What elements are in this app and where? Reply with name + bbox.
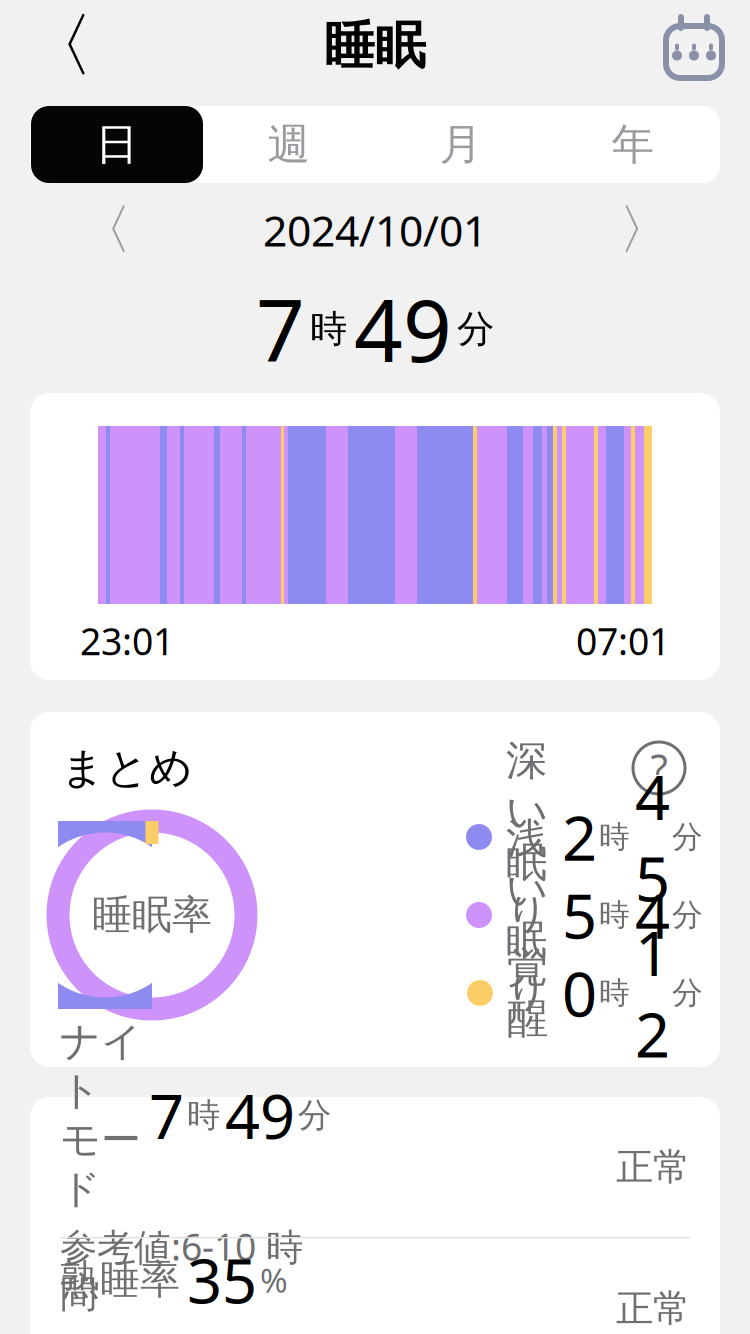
staticText: 分	[457, 306, 494, 352]
staticText: 時	[599, 896, 630, 934]
button[interactable]: 日	[31, 106, 203, 183]
staticText: ナイトモード	[60, 1017, 142, 1213]
staticText: 分	[672, 818, 703, 856]
staticText: 23:01	[80, 616, 174, 666]
staticText: 7	[149, 1075, 184, 1156]
button[interactable]: 年	[547, 106, 719, 183]
staticText: 覚醒	[507, 942, 548, 1044]
staticText: 正常	[616, 1144, 690, 1190]
staticText: 週	[267, 118, 310, 171]
staticText: 5	[562, 874, 597, 956]
staticText: 睡眠	[324, 15, 426, 77]
staticText: 2024/10/01	[263, 202, 487, 258]
staticText: 参考値:6-10 時間	[60, 1221, 303, 1317]
staticText: 〈	[24, 3, 93, 89]
button[interactable]: ヘルプ	[629, 738, 689, 798]
staticText: 〉	[618, 197, 671, 263]
staticText: 正常	[616, 1286, 690, 1331]
staticText: 深い眠り	[506, 735, 548, 939]
staticText: 49	[225, 1075, 295, 1156]
button[interactable]: 月	[375, 106, 547, 183]
staticText: ?	[650, 741, 667, 794]
staticText: 時	[599, 818, 630, 856]
button[interactable]: カレンダー	[658, 10, 730, 82]
button[interactable]: 戻る	[20, 7, 98, 85]
staticText: 分	[672, 896, 703, 934]
staticText: 時	[599, 974, 630, 1012]
staticText: 分	[672, 974, 703, 1012]
staticText: %	[260, 1258, 288, 1302]
staticText: 熟睡率	[60, 1255, 180, 1304]
staticText: 12	[635, 912, 670, 1074]
staticText: 年	[611, 118, 654, 171]
staticText: 日	[95, 118, 138, 171]
button[interactable]: 前の日	[60, 199, 150, 261]
staticText: まとめ	[61, 742, 193, 794]
staticText: 分	[298, 1095, 331, 1136]
staticText: 7	[256, 272, 305, 386]
staticText: 〈	[78, 197, 131, 263]
staticText: 時	[187, 1095, 220, 1136]
button[interactable]: 次の日	[600, 199, 690, 261]
button[interactable]: 週	[203, 106, 375, 183]
staticText: 07:01	[576, 616, 670, 666]
staticText: 35	[187, 1239, 257, 1320]
staticText: 睡眠率	[92, 890, 212, 939]
staticText: 時	[310, 306, 347, 352]
staticText: 2	[562, 796, 597, 878]
staticText: 浅い眠り	[506, 813, 548, 1017]
staticText: 49	[354, 272, 452, 386]
staticText: 0	[562, 952, 597, 1034]
staticText: 45	[635, 756, 670, 918]
staticText: 月	[439, 118, 482, 171]
staticText: 4	[635, 874, 670, 956]
